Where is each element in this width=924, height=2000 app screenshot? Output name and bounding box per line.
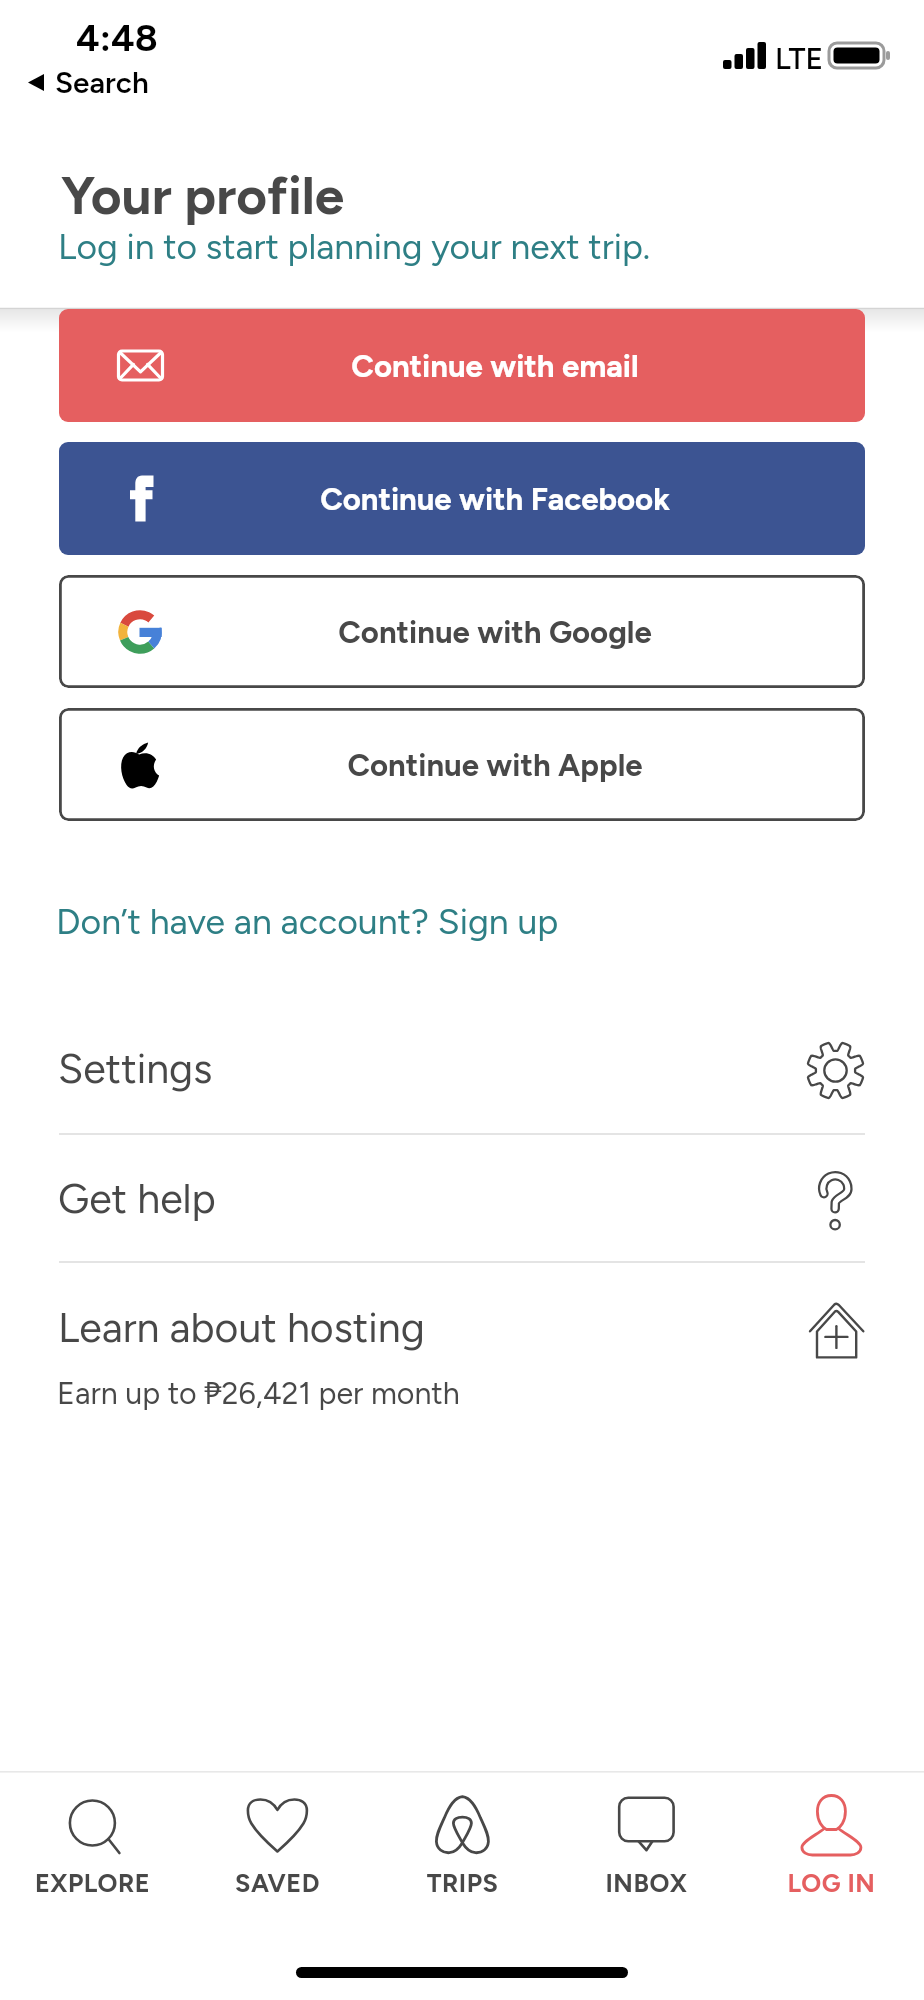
staticText: INBOX: [554, 1868, 739, 1898]
staticText: Earn up to ₱26,421 per month: [57, 1372, 460, 1413]
button[interactable]: Search: [22, 62, 152, 98]
staticText: TRIPS: [370, 1868, 555, 1898]
staticText: Continue with Facebook: [92, 480, 865, 517]
staticText: SAVED: [185, 1868, 370, 1898]
staticText: Continue with Google: [92, 613, 865, 650]
button[interactable]: LOG IN: [739, 1780, 924, 1900]
staticText: Learn about hosting: [58, 1303, 425, 1352]
staticText: Get help: [58, 1174, 216, 1223]
button[interactable]: TRIPS: [370, 1780, 555, 1900]
staticText: Continue with email: [92, 347, 865, 384]
staticText: LOG IN: [739, 1868, 924, 1898]
button[interactable]: Don’t have an account? Sign up: [57, 899, 561, 951]
button[interactable]: Get help: [0, 1140, 924, 1262]
button[interactable]: Continue with Google: [59, 575, 865, 688]
button[interactable]: EXPLORE: [0, 1780, 185, 1900]
staticText: Your profile: [61, 164, 345, 228]
staticText: Don’t have an account? Sign up: [56, 900, 559, 943]
button[interactable]: SAVED: [185, 1780, 370, 1900]
staticText: EXPLORE: [0, 1868, 185, 1898]
staticText: Continue with Apple: [92, 746, 865, 783]
button[interactable]: INBOX: [554, 1780, 739, 1900]
button[interactable]: Learn about hosting: [0, 1268, 924, 1430]
button[interactable]: Continue with Facebook: [59, 442, 865, 555]
staticText: Settings: [58, 1044, 213, 1093]
staticText: LTE: [775, 40, 824, 76]
staticText: Search: [55, 65, 149, 101]
staticText: Log in to start planning your next trip.: [58, 225, 651, 267]
staticText: 4:48: [76, 15, 158, 60]
button[interactable]: Continue with email: [59, 309, 865, 422]
button[interactable]: Continue with Apple: [59, 708, 865, 821]
button[interactable]: Settings: [0, 1010, 924, 1134]
